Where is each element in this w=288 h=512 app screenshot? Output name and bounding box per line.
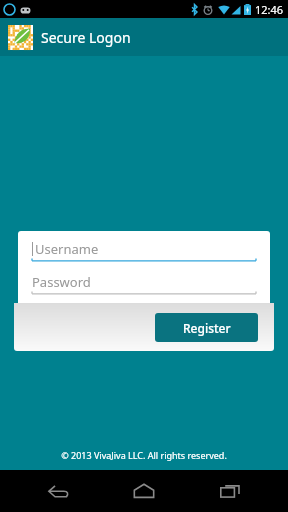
staticText: Password [32, 273, 91, 291]
staticText: Register [183, 320, 231, 336]
button[interactable]: Recent apps [203, 470, 257, 512]
button[interactable]: Home [117, 470, 171, 512]
button[interactable]: Back [32, 470, 86, 512]
button[interactable]: Username [32, 239, 256, 263]
button[interactable]: App icon [8, 25, 33, 50]
staticText: 12:46 [255, 2, 284, 17]
staticText: Secure Logon [41, 28, 131, 47]
button[interactable]: Register [155, 313, 258, 342]
staticText: Username [35, 240, 99, 258]
staticText: © 2013 VivaJiva LLC. All rights reserved… [0, 449, 288, 461]
button[interactable]: Password [32, 272, 256, 296]
